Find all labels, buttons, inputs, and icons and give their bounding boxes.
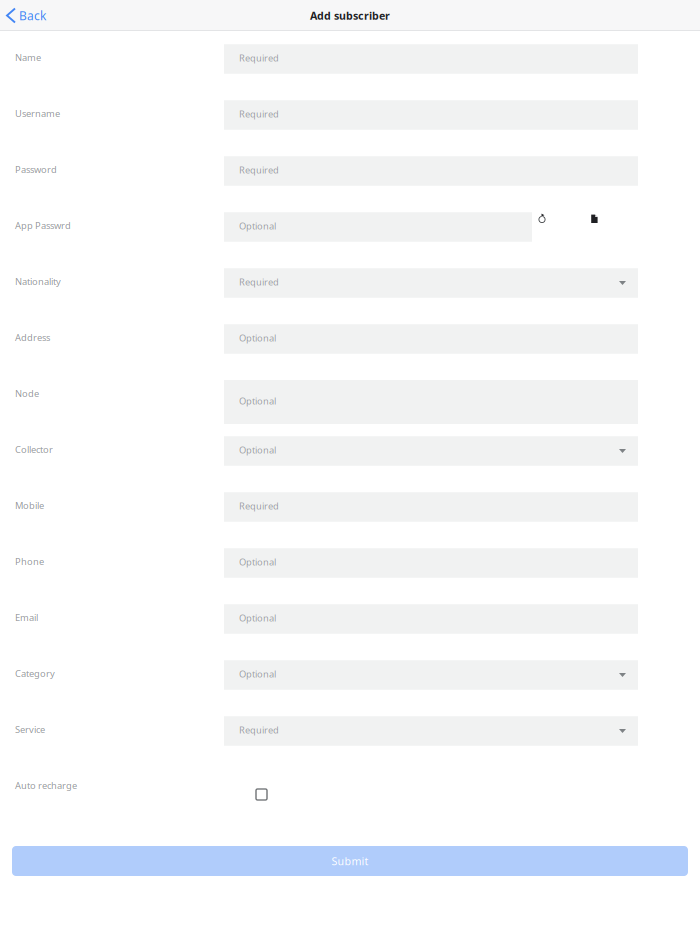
staticText: Optional bbox=[239, 556, 276, 568]
staticText: Optional bbox=[239, 668, 276, 680]
staticText: Optional bbox=[239, 332, 276, 344]
staticText: Submit bbox=[331, 854, 368, 868]
button[interactable]: Required bbox=[224, 44, 638, 74]
staticText: Phone bbox=[15, 555, 44, 568]
staticText: Service bbox=[15, 723, 45, 736]
staticText: Name bbox=[15, 51, 41, 64]
staticText: Optional bbox=[239, 444, 276, 456]
button[interactable]: Required bbox=[224, 156, 638, 186]
staticText: Required bbox=[239, 52, 279, 64]
staticText: App Passwrd bbox=[15, 219, 71, 232]
staticText: Back bbox=[19, 7, 46, 23]
button[interactable]: Required bbox=[224, 268, 638, 298]
staticText: Optional bbox=[239, 395, 276, 407]
button[interactable]: Required bbox=[224, 100, 638, 130]
button[interactable]: Back bbox=[0, 2, 46, 28]
button[interactable]: Optional bbox=[224, 380, 638, 424]
button[interactable]: Optional bbox=[224, 548, 638, 578]
staticText: Optional bbox=[239, 220, 276, 232]
staticText: Username bbox=[15, 107, 60, 120]
staticText: Collector bbox=[15, 443, 53, 456]
button[interactable]: Generate password bbox=[532, 209, 552, 229]
staticText: Required bbox=[239, 276, 279, 288]
staticText: Email bbox=[15, 611, 38, 624]
button[interactable]: Submit bbox=[12, 846, 688, 876]
button[interactable]: Optional bbox=[224, 604, 638, 634]
staticText: Required bbox=[239, 500, 279, 512]
staticText: Optional bbox=[239, 612, 276, 624]
staticText: Mobile bbox=[15, 499, 44, 512]
staticText: Required bbox=[239, 108, 279, 120]
button[interactable]: Optional bbox=[224, 660, 638, 690]
button[interactable]: Auto recharge bbox=[252, 785, 271, 804]
button[interactable]: Optional bbox=[224, 324, 638, 354]
staticText: Nationality bbox=[15, 275, 61, 288]
button[interactable]: Required bbox=[224, 492, 638, 522]
staticText: Auto recharge bbox=[15, 779, 77, 792]
staticText: Address bbox=[15, 331, 50, 344]
staticText: Add subscriber bbox=[310, 8, 390, 23]
staticText: Required bbox=[239, 164, 279, 176]
staticText: Category bbox=[15, 667, 55, 680]
staticText: Password bbox=[15, 163, 57, 176]
staticText: Required bbox=[239, 724, 279, 736]
button[interactable]: Required bbox=[224, 716, 638, 746]
staticText: Node bbox=[15, 387, 39, 400]
button[interactable]: Copy password bbox=[584, 209, 604, 229]
button[interactable]: Optional bbox=[224, 436, 638, 466]
